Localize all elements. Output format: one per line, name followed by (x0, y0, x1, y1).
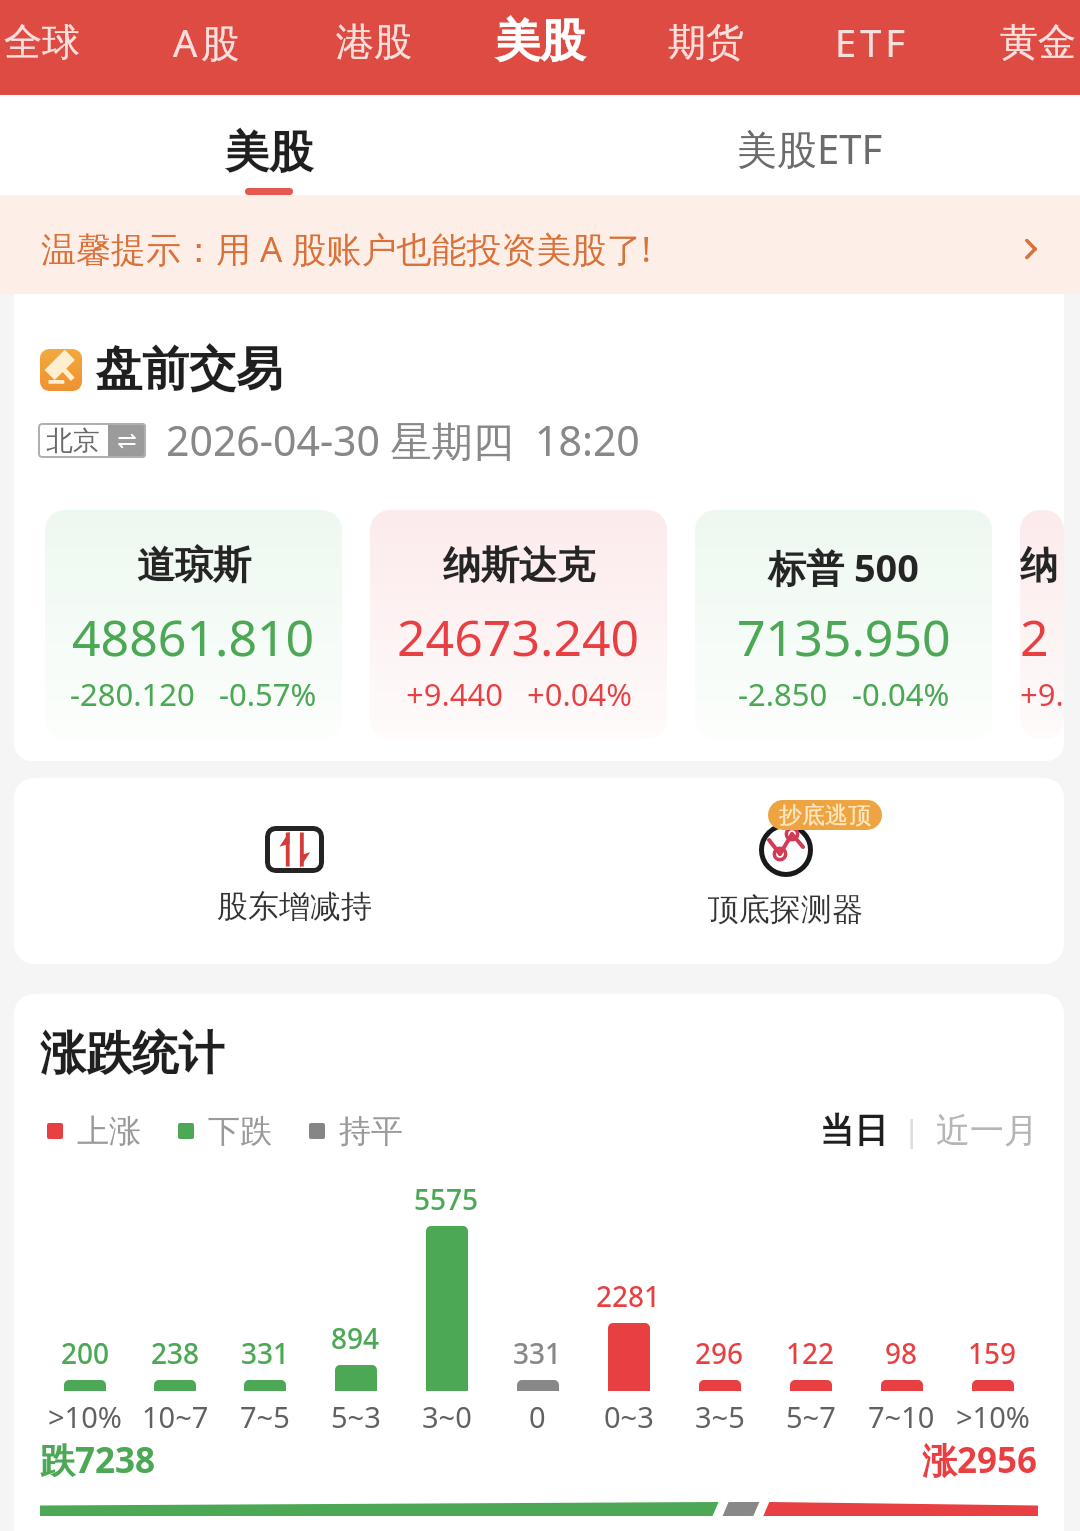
staticText: 0~3 (604, 1397, 654, 1436)
staticText: -2.850 (738, 673, 828, 715)
staticText: 抄底逃顶 (779, 801, 871, 830)
staticText: 盘前交易 (95, 340, 283, 399)
button[interactable]: 下跌 (178, 1111, 272, 1151)
button[interactable]: 美股 (149, 95, 389, 195)
staticText: 10~7 (142, 1397, 209, 1436)
staticText: 期货 (668, 18, 744, 66)
staticText: 纳斯达克 (443, 541, 595, 589)
staticText: 美股 (225, 125, 313, 180)
staticText: 5575 (414, 1180, 479, 1218)
staticText: 7~10 (868, 1397, 935, 1436)
button[interactable]: 标普 500 (695, 510, 992, 739)
button[interactable]: 当日 (820, 1109, 888, 1152)
staticText: +0.04% (527, 673, 632, 715)
staticText: 顶底探测器 (708, 890, 863, 929)
staticText: ETF (835, 16, 909, 68)
staticText: 上涨 (77, 1111, 141, 1151)
staticText: 北京 (46, 424, 100, 458)
button[interactable]: 北京 (38, 423, 146, 458)
staticText: 当日 (820, 1109, 888, 1152)
staticText: 159 (968, 1334, 1017, 1372)
staticText: 98 (885, 1334, 918, 1372)
button[interactable]: 持平 (309, 1111, 403, 1151)
staticText: 美股ETF (737, 121, 883, 176)
button[interactable]: 纳斯达克 (370, 510, 667, 739)
staticText: 近一月 (936, 1109, 1038, 1152)
button[interactable]: 上涨 (47, 1111, 141, 1151)
staticText: 标普 500 (768, 541, 920, 593)
staticText: 下跌 (208, 1111, 272, 1151)
staticText: 48861.810 (72, 603, 315, 671)
staticText: | (888, 1110, 936, 1151)
button[interactable]: 美股ETF (690, 95, 930, 195)
staticText: 涨2956 (922, 1436, 1038, 1484)
staticText: 2281 (596, 1277, 661, 1315)
button[interactable]: 期货 (623, 0, 789, 95)
staticText: 纳斯达克 (1020, 541, 1064, 589)
button[interactable]: 纳斯达克 (1020, 510, 1064, 739)
staticText: +9.440 (1020, 673, 1064, 715)
staticText: 2026-04-30 星期四 18:20 (166, 412, 640, 468)
staticText: >10% (956, 1397, 1030, 1436)
button[interactable]: 美股 (457, 0, 623, 95)
staticText: 296 (695, 1334, 744, 1372)
staticText: 持平 (339, 1111, 403, 1151)
staticText: 股东增减持 (217, 887, 372, 926)
button[interactable]: 全球 (0, 0, 125, 95)
button[interactable]: 道琼斯 (45, 510, 342, 739)
staticText: 全球 (4, 18, 80, 66)
staticText: -0.04% (852, 673, 950, 715)
button[interactable]: 黄金 (955, 0, 1080, 95)
staticText: 5~7 (786, 1397, 836, 1436)
staticText: 7135.950 (737, 603, 951, 671)
staticText: -0.57% (219, 673, 317, 715)
staticText: 涨跌统计 (40, 1025, 224, 1083)
staticText: 0 (529, 1397, 546, 1436)
staticText: >10% (48, 1397, 122, 1436)
staticText: 温馨提示：用 A 股账户也能投资美股了! (41, 225, 651, 273)
staticText: 238 (151, 1334, 200, 1372)
staticText: +9.440 (406, 673, 503, 715)
staticText: 5~3 (331, 1397, 381, 1436)
button[interactable]: 顶底探测器 (635, 778, 935, 964)
button[interactable]: 股东增减持 (144, 778, 444, 964)
staticText: 24673.240 (397, 603, 640, 671)
staticText: 3~0 (422, 1397, 472, 1436)
staticText: A股 (173, 16, 244, 68)
other: More (1016, 234, 1046, 264)
staticText: 美股 (495, 13, 585, 70)
staticText: 3~5 (695, 1397, 745, 1436)
staticText: 122 (786, 1334, 835, 1372)
button[interactable]: 温馨提示：用 A 股账户也能投资美股了! (0, 195, 1080, 294)
staticText: 港股 (336, 18, 412, 66)
button[interactable]: A股 (125, 0, 291, 95)
staticText: 331 (513, 1334, 562, 1372)
staticText: 黄金 (1000, 18, 1076, 66)
staticText: 道琼斯 (137, 541, 251, 589)
staticText: 跌7238 (40, 1436, 156, 1484)
staticText: -280.120 (70, 673, 195, 715)
staticText: 7~5 (240, 1397, 290, 1436)
staticText: 200 (61, 1334, 110, 1372)
staticText: 894 (331, 1319, 380, 1357)
staticText: 24673.240 (1020, 603, 1064, 671)
button[interactable]: 港股 (291, 0, 457, 95)
button[interactable]: ETF (789, 0, 955, 95)
staticText: 331 (241, 1334, 290, 1372)
button[interactable]: 近一月 (936, 1109, 1038, 1152)
